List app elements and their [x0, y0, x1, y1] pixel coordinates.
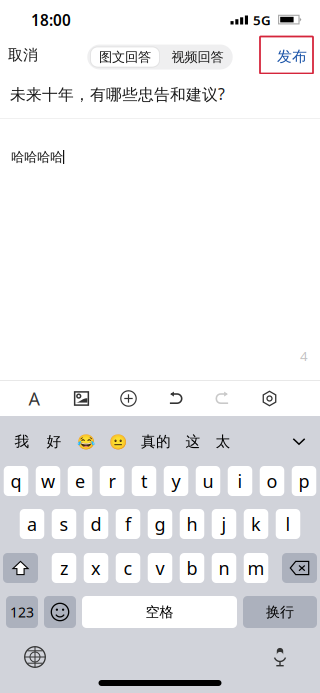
button[interactable]: a: [20, 509, 44, 539]
button[interactable]: Text style: [11, 381, 58, 416]
staticText: h: [186, 512, 197, 536]
staticText: 哈哈哈哈: [11, 149, 63, 165]
button[interactable]: 图文回答: [90, 47, 159, 67]
button[interactable]: Redo: [199, 381, 246, 416]
staticText: 发布: [277, 47, 307, 66]
button[interactable]: Shift: [3, 553, 38, 583]
staticText: b: [186, 556, 197, 580]
button[interactable]: c: [116, 553, 140, 583]
staticText: i: [237, 469, 242, 493]
button[interactable]: Switch keyboard: [13, 635, 57, 679]
button[interactable]: Dictate: [258, 635, 302, 679]
button[interactable]: Insert image: [58, 381, 105, 416]
staticText: y: [171, 469, 180, 493]
staticText: k: [251, 512, 261, 536]
button[interactable]: m: [244, 553, 268, 583]
button[interactable]: Emoji laughing: [70, 419, 102, 464]
button[interactable]: Delete: [282, 553, 317, 583]
staticText: a: [27, 512, 37, 536]
button[interactable]: 我: [6, 419, 38, 464]
button[interactable]: 发布: [260, 36, 313, 73]
button[interactable]: u: [196, 466, 220, 496]
staticText: p: [298, 469, 309, 493]
button[interactable]: 这: [178, 419, 208, 464]
button[interactable]: b: [180, 553, 204, 583]
staticText: 空格: [145, 603, 173, 621]
button[interactable]: Emoji neutral: [102, 419, 134, 464]
button[interactable]: s: [52, 509, 76, 539]
staticText: 😂: [77, 433, 95, 450]
staticText: 😐: [109, 433, 127, 450]
button[interactable]: 太: [208, 419, 238, 464]
staticText: A: [28, 386, 40, 411]
staticText: 好: [46, 432, 61, 451]
staticText: 4: [300, 347, 308, 365]
button[interactable]: r: [100, 466, 124, 496]
staticText: f: [125, 512, 131, 536]
staticText: m: [247, 556, 264, 580]
button[interactable]: Hide predictions: [284, 419, 314, 464]
button[interactable]: f: [116, 509, 140, 539]
button[interactable]: t: [132, 466, 156, 496]
staticText: l: [285, 512, 290, 536]
button[interactable]: o: [260, 466, 284, 496]
button[interactable]: 空格: [82, 596, 237, 628]
button[interactable]: y: [164, 466, 188, 496]
staticText: q: [10, 469, 21, 493]
staticText: 真的: [141, 432, 171, 451]
button[interactable]: Emoji keyboard: [44, 596, 76, 628]
button[interactable]: 换行: [243, 596, 317, 628]
button[interactable]: h: [180, 509, 204, 539]
button[interactable]: 真的: [134, 419, 178, 464]
staticText: 5G: [253, 11, 271, 29]
staticText: x: [91, 556, 101, 580]
button[interactable]: Undo: [152, 381, 199, 416]
button[interactable]: Insert: [105, 381, 152, 416]
button[interactable]: k: [244, 509, 268, 539]
button[interactable]: q: [4, 466, 28, 496]
staticText: 未来十年，有哪些忠告和建议?: [10, 83, 225, 105]
button[interactable]: x: [84, 553, 108, 583]
staticText: t: [141, 469, 147, 493]
staticText: w: [41, 469, 55, 493]
staticText: 取消: [8, 46, 38, 64]
button[interactable]: i: [228, 466, 252, 496]
button[interactable]: 123: [6, 596, 38, 628]
button[interactable]: j: [212, 509, 236, 539]
staticText: 换行: [266, 603, 294, 621]
button[interactable]: g: [148, 509, 172, 539]
staticText: n: [218, 556, 229, 580]
staticText: c: [123, 556, 132, 580]
staticText: 图文回答: [99, 49, 151, 65]
staticText: g: [154, 512, 165, 536]
staticText: r: [108, 469, 115, 493]
staticText: z: [60, 556, 68, 580]
staticText: v: [155, 556, 164, 580]
staticText: u: [202, 469, 213, 493]
button[interactable]: p: [292, 466, 316, 496]
staticText: j: [221, 512, 226, 536]
button[interactable]: 取消: [0, 36, 46, 74]
button[interactable]: l: [276, 509, 300, 539]
staticText: 18:00: [31, 10, 71, 30]
button[interactable]: 好: [38, 419, 70, 464]
staticText: 视频回答: [171, 49, 223, 65]
button[interactable]: d: [84, 509, 108, 539]
button[interactable]: e: [68, 466, 92, 496]
staticText: 我: [14, 432, 29, 451]
button[interactable]: n: [212, 553, 236, 583]
staticText: 这: [185, 432, 200, 451]
staticText: e: [75, 469, 85, 493]
button[interactable]: 视频回答: [159, 47, 229, 67]
staticText: d: [90, 512, 101, 536]
staticText: 123: [10, 602, 34, 622]
button[interactable]: Settings: [246, 381, 293, 416]
button[interactable]: z: [52, 553, 76, 583]
staticText: 太: [215, 432, 230, 451]
button[interactable]: v: [148, 553, 172, 583]
staticText: s: [59, 512, 68, 536]
staticText: o: [266, 469, 277, 493]
button[interactable]: w: [36, 466, 60, 496]
